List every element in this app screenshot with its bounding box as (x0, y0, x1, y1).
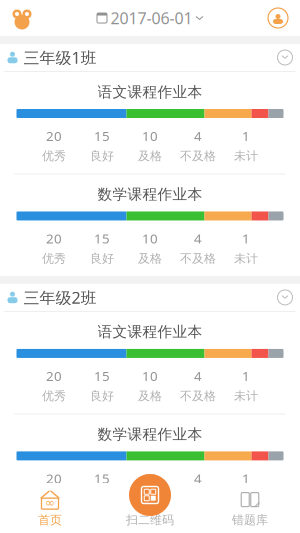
staticText: 优秀 (42, 251, 66, 266)
staticText: 错题库 (232, 513, 268, 527)
staticText: 优秀 (42, 491, 66, 506)
staticText: 优秀 (42, 149, 66, 163)
staticText: 15 (94, 229, 110, 247)
staticText: 不及格 (180, 389, 216, 403)
staticText: 良好 (90, 389, 114, 403)
button[interactable]: 三年级1班 (0, 44, 300, 71)
button[interactable]: 扫二维码 (127, 472, 173, 518)
staticText: 良好 (90, 149, 114, 163)
staticText: 语文课程作业本 (97, 323, 202, 341)
staticText: 及格 (138, 389, 162, 403)
staticText: 及格 (138, 491, 162, 506)
button[interactable]: Logo (0, 0, 44, 36)
staticText: 20 (46, 469, 62, 487)
staticText: 1 (242, 367, 250, 385)
staticText: 4 (194, 367, 202, 385)
staticText: 15 (94, 367, 110, 385)
staticText: 10 (142, 367, 158, 385)
staticText: 良好 (90, 251, 114, 266)
staticText: 不及格 (180, 149, 216, 163)
staticText: 三年级2班 (23, 287, 96, 308)
button[interactable]: ∞ (0, 483, 100, 533)
staticText: 扫二维码 (126, 513, 174, 527)
staticText: 2017-06-01 (110, 7, 192, 29)
staticText: 未计 (234, 251, 258, 266)
button[interactable]: 三年级2班 (0, 284, 300, 311)
staticText: 1 (242, 127, 250, 145)
staticText: 三年级1班 (23, 47, 96, 68)
staticText: 4 (194, 469, 202, 487)
staticText: 优秀 (42, 389, 66, 403)
staticText: 15 (94, 127, 110, 145)
staticText: 20 (46, 229, 62, 247)
button[interactable]: 扫二维码 (100, 483, 200, 533)
staticText: 4 (194, 127, 202, 145)
staticText: 首页 (38, 513, 62, 527)
staticText: 4 (194, 229, 202, 247)
button[interactable]: 错题库 (200, 483, 300, 533)
staticText: 10 (142, 229, 158, 247)
staticText: 未计 (234, 149, 258, 163)
staticText: 10 (142, 469, 158, 487)
staticText: 1 (242, 229, 250, 247)
button[interactable]: Profile (256, 0, 300, 36)
staticText: ∞ (45, 496, 55, 509)
staticText: 及格 (138, 149, 162, 163)
staticText: 不及格 (180, 251, 216, 266)
button[interactable]: 2017-06-01 (90, 0, 209, 36)
staticText: 1 (242, 469, 250, 487)
staticText: 未计 (234, 389, 258, 403)
staticText: 20 (46, 367, 62, 385)
staticText: 及格 (138, 251, 162, 266)
staticText: 数学课程作业本 (97, 425, 202, 443)
staticText: 数学课程作业本 (97, 185, 202, 203)
staticText: 20 (46, 127, 62, 145)
staticText: 未计 (234, 491, 258, 506)
staticText: 语文课程作业本 (97, 83, 202, 101)
staticText: 10 (142, 127, 158, 145)
staticText: 15 (94, 469, 110, 487)
